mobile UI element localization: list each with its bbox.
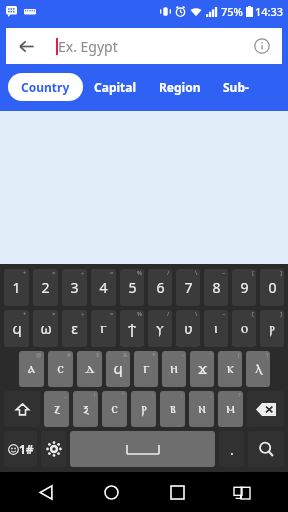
button[interactable]: ÷: [62, 310, 87, 347]
button[interactable]: ]: [260, 269, 284, 306]
button[interactable]: [: [232, 310, 256, 347]
button[interactable]: -: [162, 351, 186, 387]
button[interactable]: @: [19, 351, 44, 387]
button[interactable]: (: [218, 351, 242, 387]
staticText: =: [110, 310, 114, 318]
staticText: ⲥ: [111, 402, 118, 416]
button[interactable]: Country: [8, 73, 83, 101]
button[interactable]: Info: [242, 28, 282, 64]
staticText: ⲍ: [54, 402, 60, 416]
button[interactable]: ~: [204, 310, 228, 347]
button[interactable]: .: [219, 431, 244, 467]
button[interactable]: =: [91, 310, 116, 347]
staticText: 1: [12, 278, 21, 297]
staticText: ): [266, 351, 268, 359]
button[interactable]: Rotate screen: [222, 472, 262, 512]
button[interactable]: /: [148, 310, 172, 347]
staticText: ⲓ: [214, 322, 218, 336]
staticText: ⲅ: [143, 362, 150, 376]
button[interactable]: ;: [160, 391, 185, 427]
staticText: ε: [71, 319, 78, 338]
staticText: [: [252, 269, 254, 277]
staticText: ʋ: [184, 319, 193, 338]
button[interactable]: Shift: [4, 391, 40, 427]
staticText: 1#: [19, 441, 34, 457]
staticText: ~: [222, 310, 226, 318]
button[interactable]: Space: [70, 431, 215, 467]
staticText: ;: [181, 391, 183, 399]
button[interactable]: $: [77, 351, 102, 387]
staticText: 8: [212, 278, 221, 297]
staticText: ⲥ: [57, 362, 64, 376]
button[interactable]: ~: [204, 269, 228, 306]
button[interactable]: Settings: [41, 431, 66, 467]
button[interactable]: !: [73, 391, 98, 427]
button[interactable]: Search: [248, 431, 284, 467]
button[interactable]: _: [44, 391, 69, 427]
button[interactable]: Symbols: [4, 431, 37, 467]
staticText: /: [167, 310, 170, 318]
staticText: 4: [99, 278, 108, 297]
staticText: 2: [41, 278, 50, 297]
staticText: 0: [268, 278, 277, 297]
staticText: ⲝ: [83, 402, 89, 416]
button[interactable]: ÷: [62, 269, 87, 306]
button[interactable]: *: [134, 351, 158, 387]
staticText: %: [137, 269, 142, 277]
staticText: ϥ: [12, 321, 22, 337]
button[interactable]: &: [106, 351, 130, 387]
button[interactable]: Home: [91, 472, 131, 512]
staticText: $: [96, 351, 100, 359]
button[interactable]: ×: [33, 269, 58, 306]
button[interactable]: Sub-region: [212, 73, 288, 101]
button[interactable]: ×: [33, 310, 58, 347]
button[interactable]: ]: [260, 310, 284, 347]
staticText: ⲙ: [226, 402, 235, 416]
button[interactable]: ): [246, 351, 270, 387]
staticText: ⲇ: [85, 362, 95, 376]
staticText: 75%: [221, 4, 243, 19]
staticText: ÷: [81, 310, 85, 318]
button[interactable]: =: [91, 269, 116, 306]
button[interactable]: \: [176, 310, 200, 347]
button[interactable]: +: [4, 269, 29, 306]
staticText: Capital: [94, 79, 137, 95]
staticText: &: [123, 351, 128, 359]
button[interactable]: Recents: [157, 472, 197, 512]
staticText: ,: [210, 391, 212, 399]
button[interactable]: Back: [6, 28, 46, 64]
button[interactable]: +: [4, 310, 29, 347]
staticText: .: [230, 440, 234, 459]
staticText: \: [195, 269, 198, 277]
button[interactable]: ?: [218, 391, 243, 427]
staticText: ?: [238, 391, 241, 399]
button[interactable]: Backspace: [247, 391, 284, 427]
button[interactable]: Back: [26, 472, 66, 512]
button[interactable]: Capital: [83, 73, 148, 101]
button[interactable]: %: [120, 310, 144, 347]
button[interactable]: %: [120, 269, 144, 306]
staticText: ×: [52, 310, 56, 318]
button[interactable]: /: [148, 269, 172, 306]
button[interactable]: #: [48, 351, 73, 387]
staticText: !: [94, 391, 96, 399]
staticText: ⲗ: [255, 362, 262, 376]
staticText: 5: [128, 278, 137, 297]
staticText: ": [122, 391, 125, 399]
staticText: ⲏ: [170, 362, 178, 376]
staticText: ÷: [81, 269, 85, 277]
button[interactable]: Region: [148, 73, 212, 101]
staticText: #: [67, 351, 71, 359]
button[interactable]: ,: [189, 391, 214, 427]
staticText: Ex. Egypt: [58, 37, 118, 56]
staticText: ⲛ: [198, 402, 206, 416]
staticText: ⲣ: [269, 322, 275, 336]
button[interactable]: \: [176, 269, 200, 306]
staticText: /: [167, 269, 170, 277]
button[interactable]: :: [131, 391, 156, 427]
staticText: Region: [159, 79, 201, 95]
button[interactable]: ": [102, 391, 127, 427]
staticText: ⲁ: [28, 362, 35, 376]
button[interactable]: ': [190, 351, 214, 387]
button[interactable]: [: [232, 269, 256, 306]
